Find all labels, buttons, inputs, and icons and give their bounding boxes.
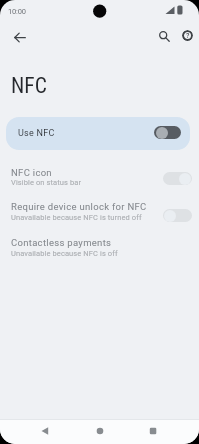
staticText: ? <box>186 32 190 40</box>
button[interactable] <box>156 28 172 44</box>
staticText: NFC <box>11 73 47 98</box>
staticText: Require device unlock for NFC <box>11 201 147 212</box>
button[interactable] <box>87 419 113 444</box>
button[interactable]: Contactless payments <box>0 233 199 266</box>
button[interactable] <box>32 419 58 444</box>
button[interactable]: ? <box>182 30 193 41</box>
staticText: Unavailable because NFC is off <box>11 249 118 258</box>
staticText: Unavailable because NFC is turned off <box>11 213 142 222</box>
button[interactable] <box>154 126 181 139</box>
button[interactable] <box>163 209 192 222</box>
button[interactable] <box>163 172 192 185</box>
button[interactable]: Require device unlock for NFC <box>0 197 199 230</box>
button[interactable] <box>11 28 29 46</box>
button[interactable]: Use NFC <box>6 117 190 150</box>
staticText: Use NFC <box>18 128 55 139</box>
staticText: 10:00 <box>8 7 26 16</box>
staticText: NFC icon <box>11 167 52 178</box>
staticText: Contactless payments <box>11 237 112 248</box>
staticText: Visible on status bar <box>11 178 82 187</box>
button[interactable]: NFC icon <box>0 162 199 195</box>
button[interactable] <box>140 419 166 444</box>
